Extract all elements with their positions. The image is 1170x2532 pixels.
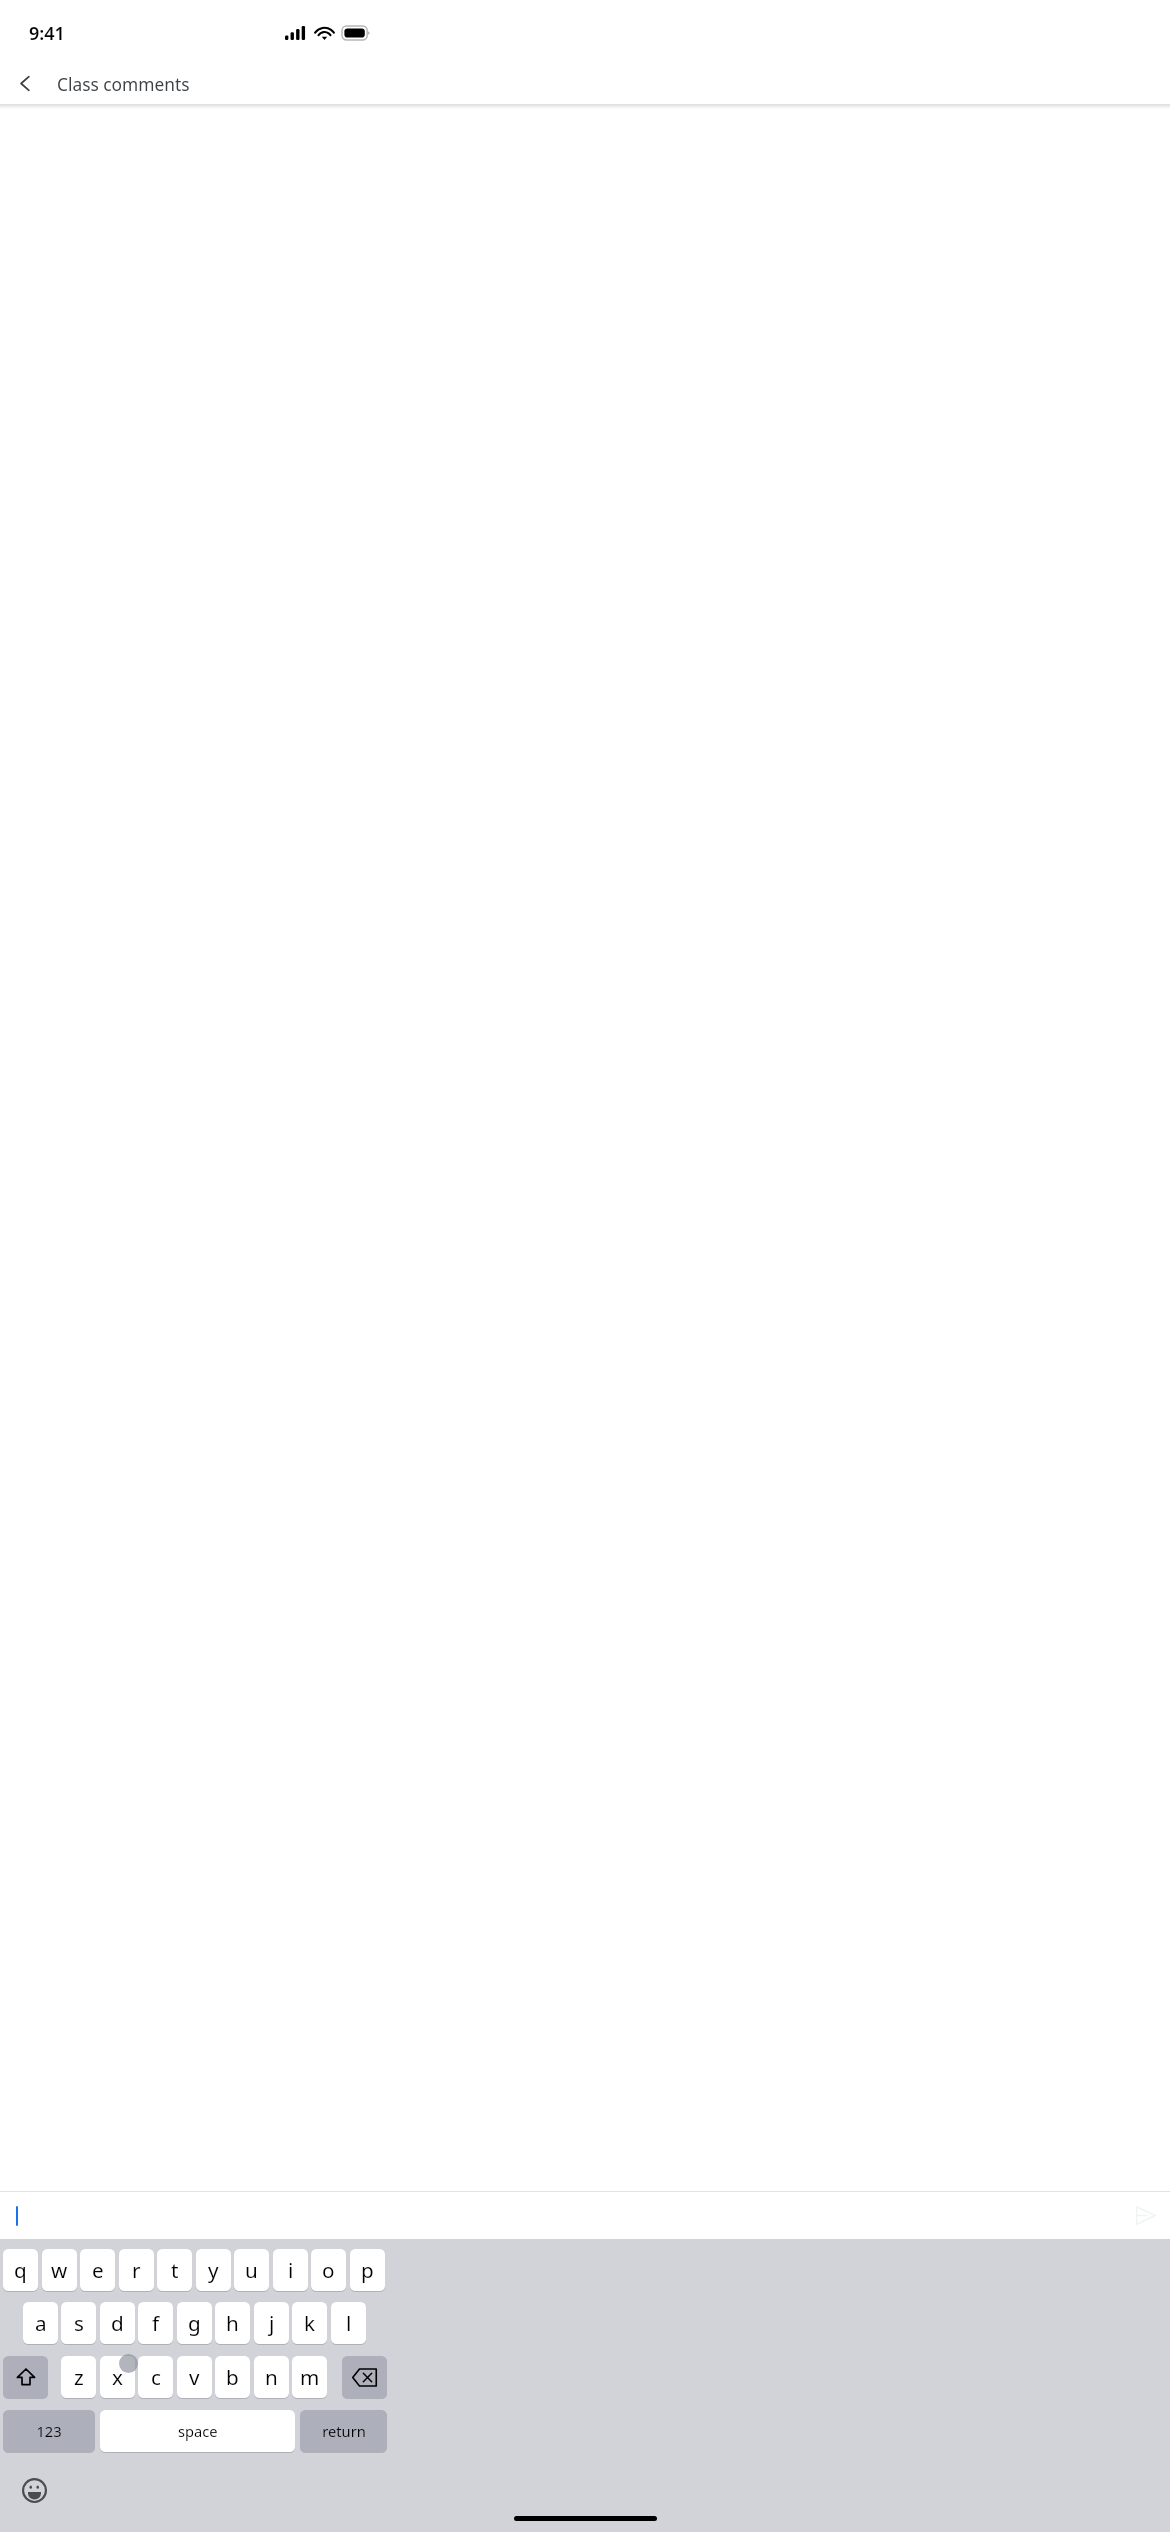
staticText: y (208, 2256, 219, 2284)
button[interactable]: w (42, 2249, 77, 2291)
button[interactable]: Send (1127, 2197, 1164, 2234)
button[interactable]: t (157, 2249, 192, 2291)
button[interactable]: n (254, 2356, 289, 2398)
staticText: u (245, 2256, 258, 2284)
staticText: c (151, 2363, 161, 2391)
button[interactable]: h (215, 2302, 250, 2344)
staticText: m (300, 2363, 320, 2391)
staticText: r (132, 2256, 141, 2284)
staticText: g (188, 2309, 201, 2337)
button[interactable]: d (100, 2302, 135, 2344)
button[interactable]: e (80, 2249, 115, 2291)
staticText: Class comments (57, 72, 190, 96)
button[interactable]: Backspace (342, 2356, 387, 2398)
button[interactable]: z (61, 2356, 96, 2398)
button[interactable]: j (254, 2302, 289, 2344)
staticText: return (322, 2421, 366, 2441)
staticText: 123 (36, 2421, 62, 2441)
staticText: a (35, 2309, 47, 2337)
button[interactable]: o (311, 2249, 346, 2291)
button[interactable]: r (119, 2249, 154, 2291)
button[interactable]: k (292, 2302, 327, 2344)
button[interactable]: i (273, 2249, 308, 2291)
staticText: j (269, 2309, 275, 2337)
staticText: k (304, 2309, 316, 2337)
button[interactable]: 123 (3, 2410, 95, 2452)
staticText: d (111, 2309, 124, 2337)
button[interactable]: s (61, 2302, 96, 2344)
staticText: t (171, 2256, 179, 2284)
staticText: x (112, 2363, 123, 2391)
button[interactable]: Emoji (16, 2472, 53, 2509)
staticText: o (322, 2256, 335, 2284)
staticText: w (51, 2256, 68, 2284)
staticText: f (152, 2309, 160, 2337)
staticText: n (265, 2363, 278, 2391)
staticText: e (92, 2256, 104, 2284)
staticText: q (14, 2256, 27, 2284)
button[interactable]: b (215, 2356, 250, 2398)
staticText: p (361, 2256, 374, 2284)
button[interactable]: l (331, 2302, 366, 2344)
button[interactable]: x (100, 2356, 135, 2398)
staticText: s (74, 2309, 84, 2337)
staticText: z (74, 2363, 84, 2391)
button[interactable]: y (196, 2249, 231, 2291)
button[interactable]: return (300, 2410, 387, 2452)
button[interactable]: m (292, 2356, 327, 2398)
staticText: v (189, 2363, 200, 2391)
staticText: b (226, 2363, 239, 2391)
button[interactable]: p (350, 2249, 385, 2291)
button[interactable]: q (3, 2249, 38, 2291)
button[interactable]: a (23, 2302, 58, 2344)
staticText: h (226, 2309, 239, 2337)
staticText: l (346, 2309, 352, 2337)
staticText: 9:41 (29, 21, 65, 46)
button[interactable]: v (177, 2356, 212, 2398)
button[interactable]: g (177, 2302, 212, 2344)
button[interactable]: u (234, 2249, 269, 2291)
button[interactable]: Back (7, 65, 44, 102)
button[interactable]: c (138, 2356, 173, 2398)
button[interactable]: f (138, 2302, 173, 2344)
staticText: i (288, 2256, 294, 2284)
staticText: space (178, 2421, 218, 2441)
button[interactable]: space (100, 2410, 295, 2452)
button[interactable]: Shift (3, 2356, 48, 2398)
